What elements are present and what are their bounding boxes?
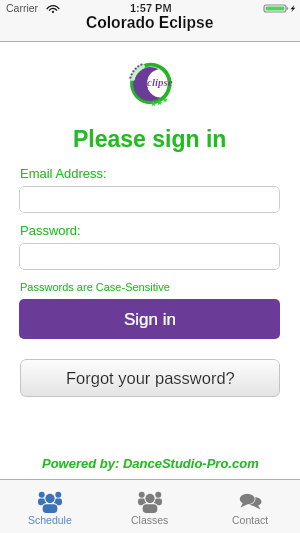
staticText: Passwords are Case-Sensitive [20,281,170,293]
staticText: Please sign in [73,126,227,152]
staticText: Carrier [6,2,39,14]
staticText: Schedule [28,514,72,526]
staticText: 1:57 PM [130,2,172,14]
staticText: clipse [147,76,173,88]
other: Wi-Fi signal [47,5,59,13]
staticText: Classes [131,514,169,526]
staticText: Forgot your password? [66,369,235,387]
button[interactable] [19,243,280,270]
button[interactable] [19,186,280,213]
button[interactable]: Contact [200,480,300,533]
button[interactable]: Forgot your password? [20,359,280,397]
staticText: Password: [20,223,81,238]
other: Battery charging [264,5,295,12]
button[interactable]: Schedule [0,480,100,533]
staticText: Powered by: DanceStudio-Pro.com [42,456,259,471]
button[interactable]: Sign in [19,299,280,339]
staticText: Email Address: [20,166,107,181]
staticText: Sign in [124,310,176,329]
staticText: Contact [232,514,269,526]
staticText: Colorado Eclipse [86,14,214,31]
button[interactable]: Classes [100,480,200,533]
